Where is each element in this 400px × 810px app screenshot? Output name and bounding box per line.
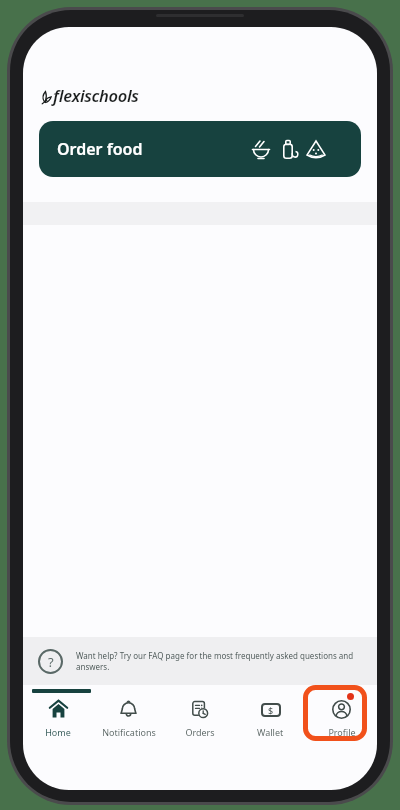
- button[interactable]: $: [235, 697, 306, 738]
- button[interactable]: Profile: [306, 697, 377, 738]
- staticText: flexischools: [53, 84, 139, 106]
- staticText: ?: [48, 653, 54, 671]
- staticText: Orders: [185, 726, 215, 738]
- button[interactable]: Orders: [164, 697, 235, 738]
- button[interactable]: Order food: [39, 121, 361, 177]
- staticText: Notifications: [102, 726, 156, 738]
- button[interactable]: Home: [23, 697, 93, 738]
- staticText: Wallet: [257, 726, 284, 738]
- staticText: Profile: [328, 726, 356, 738]
- staticText: Want help? Try our FAQ page for the most…: [76, 650, 354, 673]
- staticText: $: [268, 704, 274, 716]
- staticText: Order food: [57, 138, 143, 160]
- button[interactable]: Notifications: [93, 697, 164, 738]
- staticText: Home: [45, 726, 71, 738]
- button[interactable]: ?: [23, 637, 377, 685]
